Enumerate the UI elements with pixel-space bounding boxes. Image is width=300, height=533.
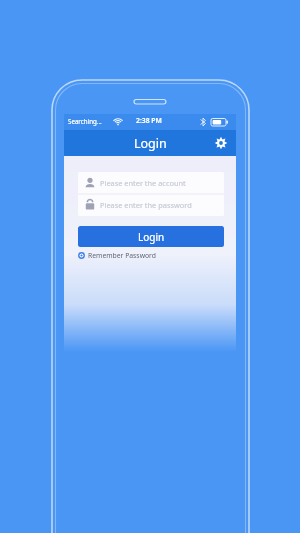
staticText: Remember Password [88, 251, 156, 260]
staticText: Login [134, 135, 167, 152]
button[interactable]: Remember Password [76, 249, 156, 262]
staticText: Searching... [68, 117, 102, 125]
staticText: Please enter the account [100, 178, 186, 188]
button[interactable]: Login [64, 130, 236, 156]
button[interactable]: Please enter the account [78, 172, 224, 194]
button[interactable]: Please enter the password [78, 194, 224, 216]
button[interactable]: Login [78, 226, 224, 247]
staticText: Please enter the password [100, 200, 192, 210]
staticText: Login [138, 230, 165, 244]
staticText: 2:38 PM [136, 116, 162, 125]
button[interactable]: Settings [210, 131, 232, 155]
